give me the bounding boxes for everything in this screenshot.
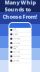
- button[interactable]: Bull Whip: [9, 32, 31, 37]
- staticText: Deep Whip: [13, 55, 20, 57]
- button[interactable]: Long Whip: [9, 41, 31, 45]
- button[interactable]: Whip Crack: [9, 28, 31, 32]
- button[interactable]: Short Whip: [9, 37, 31, 41]
- button[interactable]: Quick Whip: [9, 50, 31, 54]
- staticText: Choose From!: [2, 13, 37, 20]
- staticText: Whip Crack: [13, 28, 18, 32]
- button[interactable]: Double Whip: [9, 45, 31, 50]
- staticText: Quick Whip: [13, 51, 20, 53]
- staticText: Short Whip: [13, 38, 20, 40]
- staticText: Many Whip Sounds to: [4, 0, 35, 13]
- staticText: Light Whip: [13, 60, 19, 62]
- staticText: Long Whip: [13, 42, 20, 44]
- staticText: Bull Whip: [13, 33, 18, 35]
- button[interactable]: Light Whip: [9, 59, 31, 63]
- button[interactable]: Deep Whip: [9, 54, 31, 59]
- staticText: Double Whip: [13, 46, 18, 49]
